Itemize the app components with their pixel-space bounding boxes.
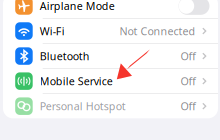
button[interactable]: Wi-Fi	[3, 19, 218, 43]
button[interactable]: Mobile Service	[3, 69, 218, 93]
staticText: Off	[181, 49, 196, 63]
staticText: Not Connected	[120, 24, 196, 38]
staticText: Mobile Service	[40, 74, 113, 88]
staticText: Bluetooth	[40, 49, 90, 63]
button[interactable]: Personal Hotspot	[3, 94, 218, 118]
staticText: Wi-Fi	[40, 24, 65, 38]
staticText: Airplane Mode	[40, 0, 115, 13]
staticText: Off	[181, 99, 196, 113]
staticText: Personal Hotspot	[40, 99, 126, 113]
staticText: Off	[181, 74, 196, 88]
button[interactable]: Airplane Mode	[3, 0, 218, 18]
button[interactable]: Bluetooth	[3, 44, 218, 68]
